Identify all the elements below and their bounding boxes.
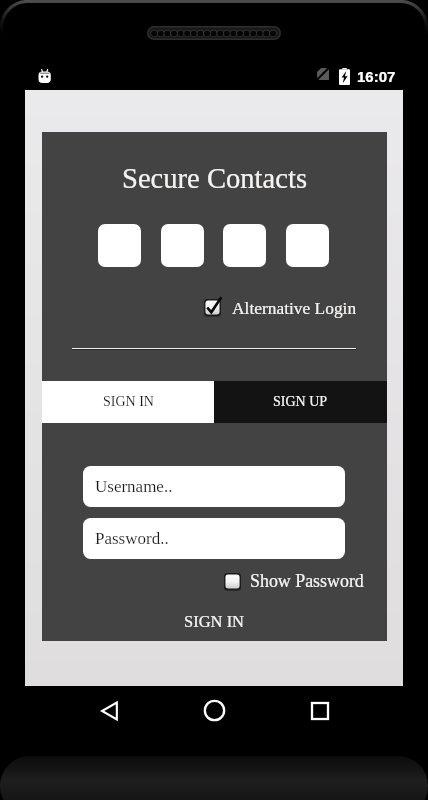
button[interactable]: Home — [194, 690, 235, 731]
button[interactable]: SIGN IN — [42, 604, 387, 638]
staticText: Username.. — [95, 477, 173, 496]
button[interactable]: PIN digit — [286, 224, 329, 267]
staticText: Secure Contacts — [122, 163, 308, 195]
staticText: 16:07 — [357, 68, 396, 85]
button[interactable]: PIN digit — [98, 224, 141, 267]
staticText: Password.. — [95, 529, 169, 548]
staticText: Alternative Login — [232, 298, 357, 317]
button[interactable]: SIGN UP — [214, 381, 387, 423]
staticText: SIGN UP — [273, 394, 328, 410]
staticText: SIGN IN — [103, 394, 154, 410]
staticText: Show Password — [250, 571, 364, 591]
button[interactable]: Alternative Login — [204, 295, 357, 319]
button[interactable]: SIGN IN — [42, 381, 214, 423]
button[interactable]: Password.. — [83, 518, 345, 559]
button[interactable]: Recent apps — [299, 690, 340, 731]
staticText: SIGN IN — [184, 612, 245, 630]
button[interactable]: Show Password — [224, 569, 364, 593]
button[interactable]: Username.. — [83, 466, 345, 507]
button[interactable]: PIN digit — [223, 224, 266, 267]
button[interactable]: Back — [89, 690, 130, 731]
button[interactable]: PIN digit — [161, 224, 204, 267]
